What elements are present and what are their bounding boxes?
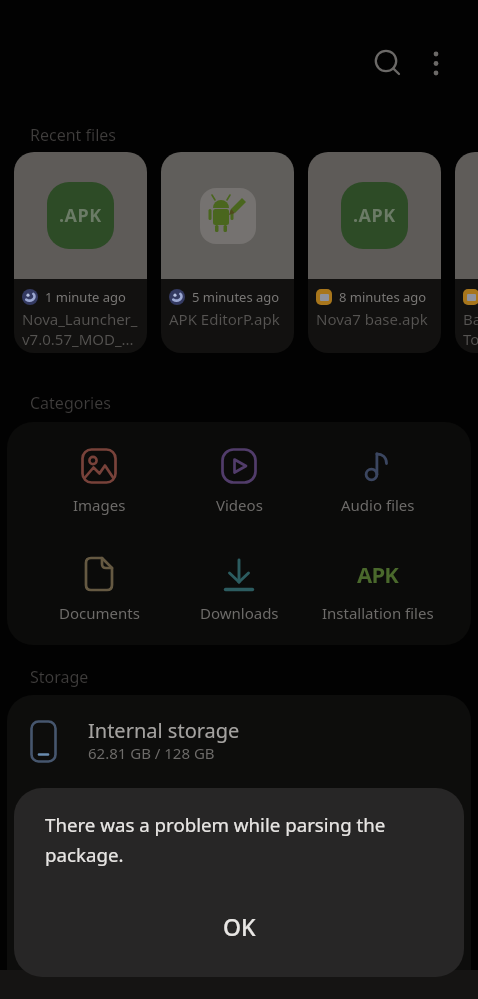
button[interactable]: .APK [308, 152, 441, 353]
staticText: Base_pack [463, 309, 478, 329]
staticText: Nova_Launcher_ [22, 309, 138, 329]
staticText: Nova7 base.apk [316, 309, 428, 329]
staticText: Tools_... [463, 329, 478, 349]
staticText: 62.81 GB / 128 GB [88, 743, 215, 763]
staticText: APK [357, 559, 399, 589]
button[interactable]: Audio files [308, 443, 448, 539]
staticText: APK EditorP.apk [169, 309, 280, 329]
button[interactable]: 5 minutes ago [161, 152, 294, 353]
button[interactable]: OK [194, 900, 284, 952]
staticText: Recent files [30, 124, 116, 146]
button[interactable]: Images [29, 443, 169, 539]
button[interactable] [368, 44, 406, 82]
staticText: There was a problem while parsing the [45, 812, 386, 837]
staticText: Downloads [200, 603, 279, 623]
staticText: OK [223, 911, 256, 942]
staticText: .APK [59, 203, 102, 228]
button[interactable]: Internal storage [7, 695, 471, 999]
staticText: Categories [30, 392, 111, 414]
staticText: .APK [353, 203, 396, 228]
staticText: package. [45, 842, 124, 867]
staticText: Storage [30, 666, 89, 688]
button[interactable]: .APK [455, 152, 478, 353]
staticText: 8 minutes ago [339, 288, 427, 306]
staticText: 1 minute ago [45, 288, 126, 306]
button[interactable]: APK [308, 551, 448, 647]
staticText: 5 minutes ago [192, 288, 280, 306]
button[interactable] [417, 44, 455, 82]
staticText: Audio files [341, 495, 415, 515]
staticText: Internal storage [88, 717, 240, 744]
button[interactable]: Videos [169, 443, 309, 539]
staticText: v7.0.57_MOD_... [22, 329, 134, 349]
staticText: Videos [216, 495, 263, 515]
button[interactable]: Documents [29, 551, 169, 647]
button[interactable]: Downloads [169, 551, 309, 647]
button[interactable]: .APK [14, 152, 147, 353]
staticText: Images [73, 495, 126, 515]
staticText: Installation files [322, 603, 434, 623]
staticText: Documents [59, 603, 140, 623]
